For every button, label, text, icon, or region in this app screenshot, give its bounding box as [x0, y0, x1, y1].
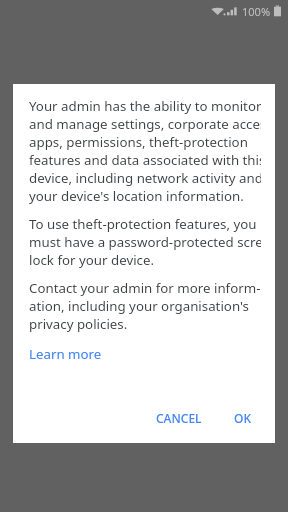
staticText: must have a password-protected screen: [29, 233, 261, 251]
staticText: features and data associated with this: [29, 151, 261, 169]
staticText: To use theft-protection features, you: [29, 215, 257, 233]
button[interactable]: Learn more: [29, 343, 102, 365]
staticText: lock for your device.: [29, 251, 155, 269]
staticText: Learn more: [29, 345, 102, 363]
staticText: Contact your admin for more inform-: [29, 279, 261, 297]
button[interactable]: CANCEL: [152, 402, 206, 434]
staticText: apps, permissions, theft-protection: [29, 133, 248, 151]
staticText: 100%: [242, 4, 271, 19]
staticText: Your admin has the ability to monitor: [29, 97, 261, 115]
staticText: OK: [234, 410, 251, 426]
button[interactable]: OK: [230, 402, 255, 434]
staticText: ation, including your organisation's: [29, 297, 249, 315]
staticText: your device's location information.: [29, 187, 244, 205]
staticText: CANCEL: [156, 410, 202, 426]
staticText: and manage settings, corporate access,: [29, 115, 261, 133]
staticText: device, including network activity and: [29, 169, 261, 187]
staticText: privacy policies.: [29, 315, 128, 333]
